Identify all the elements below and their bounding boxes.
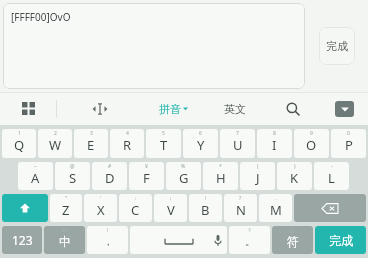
staticText: O (306, 136, 317, 154)
button[interactable]: En (44, 226, 85, 254)
staticText: . (275, 195, 277, 202)
button[interactable]: 0 (331, 129, 366, 158)
staticText: I (272, 136, 277, 154)
button[interactable]: ¥ (129, 162, 164, 190)
button[interactable]: ~ (18, 162, 53, 190)
button[interactable]: . (259, 194, 292, 222)
staticText: D (105, 169, 115, 187)
staticText: H (216, 169, 226, 187)
staticText: E (87, 136, 95, 154)
staticText: 6 (199, 130, 202, 137)
button[interactable]: " (50, 194, 82, 222)
button[interactable]: ' (84, 194, 117, 222)
staticText: 9 (310, 130, 313, 137)
staticText: S (69, 169, 77, 187)
button[interactable]: * (203, 162, 238, 190)
staticText: 3 (90, 130, 93, 137)
staticText: 5 (162, 130, 165, 137)
staticText: 完成 (329, 233, 353, 248)
button[interactable] (294, 194, 366, 222)
button[interactable] (2, 194, 48, 222)
staticText: ~ (34, 163, 37, 170)
staticText: C (131, 201, 140, 219)
button[interactable]: ? (224, 194, 257, 222)
button[interactable]: ！ (87, 226, 128, 254)
staticText: ? (239, 195, 242, 202)
staticText: 英文 (224, 102, 246, 116)
button[interactable]: : (119, 194, 152, 222)
staticText: L (328, 169, 335, 187)
staticText: 123 (12, 232, 33, 248)
button[interactable]: 2 (38, 129, 72, 158)
button[interactable]: - (314, 162, 349, 190)
staticText: ) (294, 163, 296, 170)
staticText: % (181, 163, 186, 170)
button[interactable]: ) (277, 162, 312, 190)
button[interactable]: 完成 (319, 27, 355, 65)
button[interactable]: 完成 (315, 226, 366, 254)
button[interactable]: [FFFF00]OvO (3, 3, 305, 89)
staticText: 符 (287, 234, 299, 249)
staticText: ; (170, 195, 172, 202)
button[interactable]: 8 (257, 129, 292, 158)
button[interactable]: Hide keyboard (335, 101, 354, 117)
staticText: B (201, 201, 210, 219)
staticText: * (219, 163, 222, 170)
staticText: K (290, 169, 299, 187)
button[interactable]: # (92, 162, 127, 190)
staticText: N (236, 201, 246, 219)
staticText: @ (70, 163, 75, 170)
staticText: 2 (54, 130, 57, 137)
button[interactable]: 6 (183, 129, 218, 158)
staticText: 8 (273, 130, 276, 137)
button[interactable]: Space (130, 226, 227, 254)
staticText: U (233, 136, 243, 154)
staticText: G (179, 169, 189, 187)
staticText: 0 (347, 130, 350, 137)
staticText: 完成 (326, 39, 348, 53)
staticText: : (135, 195, 137, 202)
button[interactable]: ○ (272, 226, 313, 254)
button[interactable]: @ (55, 162, 90, 190)
staticText: ！ (105, 227, 110, 233)
button[interactable]: Search (265, 92, 320, 125)
staticText: ¥ (145, 163, 148, 170)
button[interactable]: 4 (110, 129, 144, 158)
button[interactable]: % (166, 162, 201, 190)
staticText: W (49, 136, 62, 154)
button[interactable]: 3 (74, 129, 108, 158)
button[interactable]: ; (154, 194, 187, 222)
button[interactable]: ! (189, 194, 222, 222)
staticText: 1 (18, 130, 21, 137)
staticText: ' (100, 195, 102, 202)
button[interactable]: ( (240, 162, 275, 190)
staticText: 。 (245, 235, 255, 248)
button[interactable]: 英文 (204, 92, 265, 125)
button[interactable]: 9 (294, 129, 329, 158)
staticText: P (345, 136, 353, 154)
staticText: # (108, 163, 112, 170)
staticText: En (62, 227, 68, 234)
staticText: ! (205, 195, 207, 202)
button[interactable]: 拼音 (143, 92, 204, 125)
button[interactable]: 1 (2, 129, 36, 158)
staticText: 中 (59, 234, 71, 249)
staticText: T (160, 136, 168, 154)
staticText: 4 (126, 130, 129, 137)
staticText: " (65, 195, 68, 202)
staticText: Y (197, 136, 205, 154)
staticText: V (167, 201, 175, 219)
staticText: Z (62, 201, 70, 219)
staticText: - (331, 163, 333, 170)
staticText: M (270, 201, 282, 219)
button[interactable]: Keyboard panels (0, 92, 56, 125)
staticText: Q (14, 136, 25, 154)
staticText: F (143, 169, 150, 187)
button[interactable]: ？ (229, 226, 270, 254)
button[interactable]: 7 (220, 129, 255, 158)
button[interactable]: Move cursor (57, 92, 143, 125)
button[interactable]: 123 (2, 226, 42, 254)
button[interactable]: 5 (146, 129, 181, 158)
staticText: 拼音 (159, 102, 181, 116)
